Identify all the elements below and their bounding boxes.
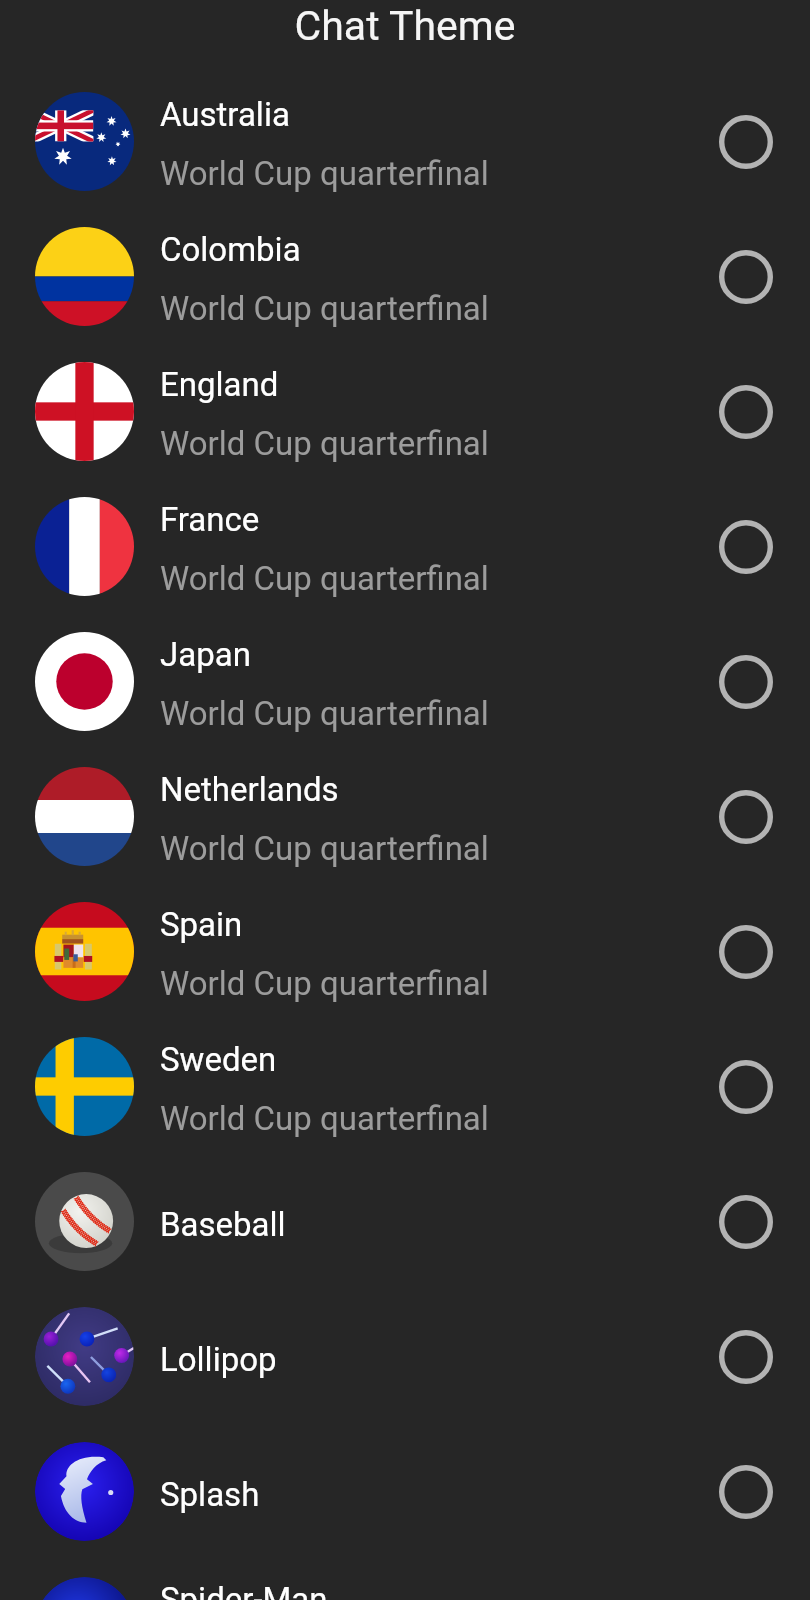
staticText: World Cup quarterfinal — [160, 559, 489, 598]
button[interactable]: England — [0, 344, 810, 479]
button[interactable]: Select England — [701, 384, 791, 439]
staticText: Spain — [160, 905, 243, 944]
button[interactable]: Netherlands — [0, 749, 810, 884]
button[interactable]: Splash — [0, 1424, 810, 1559]
staticText: World Cup quarterfinal — [160, 829, 489, 868]
staticText: World Cup quarterfinal — [160, 964, 489, 1003]
staticText: France — [160, 500, 260, 539]
button[interactable]: Select Australia — [701, 114, 791, 169]
staticText: Chat Theme — [0, 2, 810, 50]
button[interactable]: France — [0, 479, 810, 614]
button[interactable]: Select Sweden — [701, 1059, 791, 1114]
button[interactable]: Spider-Man — [0, 1559, 810, 1600]
staticText: World Cup quarterfinal — [160, 1099, 489, 1138]
button[interactable]: Baseball — [0, 1154, 810, 1289]
staticText: Sweden — [160, 1040, 277, 1079]
staticText: World Cup quarterfinal — [160, 694, 489, 733]
button[interactable]: Colombia — [0, 209, 810, 344]
staticText: Baseball — [160, 1205, 286, 1244]
button[interactable]: Select Spain — [701, 924, 791, 979]
staticText: Japan — [160, 635, 251, 674]
button[interactable]: Select Baseball — [701, 1194, 791, 1249]
staticText: Colombia — [160, 230, 301, 269]
staticText: Splash — [160, 1475, 260, 1514]
staticText: Netherlands — [160, 770, 339, 809]
button[interactable]: Select France — [701, 519, 791, 574]
staticText: World Cup quarterfinal — [160, 154, 489, 193]
staticText: Australia — [160, 95, 290, 134]
staticText: World Cup quarterfinal — [160, 289, 489, 328]
button[interactable]: Sweden — [0, 1019, 810, 1154]
button[interactable]: Lollipop — [0, 1289, 810, 1424]
button[interactable]: Japan — [0, 614, 810, 749]
button[interactable]: Select Splash — [701, 1464, 791, 1519]
button[interactable]: Select Netherlands — [701, 789, 791, 844]
button[interactable]: Spain — [0, 884, 810, 1019]
button[interactable]: Select Lollipop — [701, 1329, 791, 1384]
staticText: World Cup quarterfinal — [160, 424, 489, 463]
staticText: England — [160, 365, 279, 404]
staticText: Spider-Man — [160, 1580, 328, 1600]
button[interactable]: Australia — [0, 74, 810, 209]
staticText: Lollipop — [160, 1340, 277, 1379]
button[interactable]: Select Colombia — [701, 249, 791, 304]
button[interactable]: Select Japan — [701, 654, 791, 709]
